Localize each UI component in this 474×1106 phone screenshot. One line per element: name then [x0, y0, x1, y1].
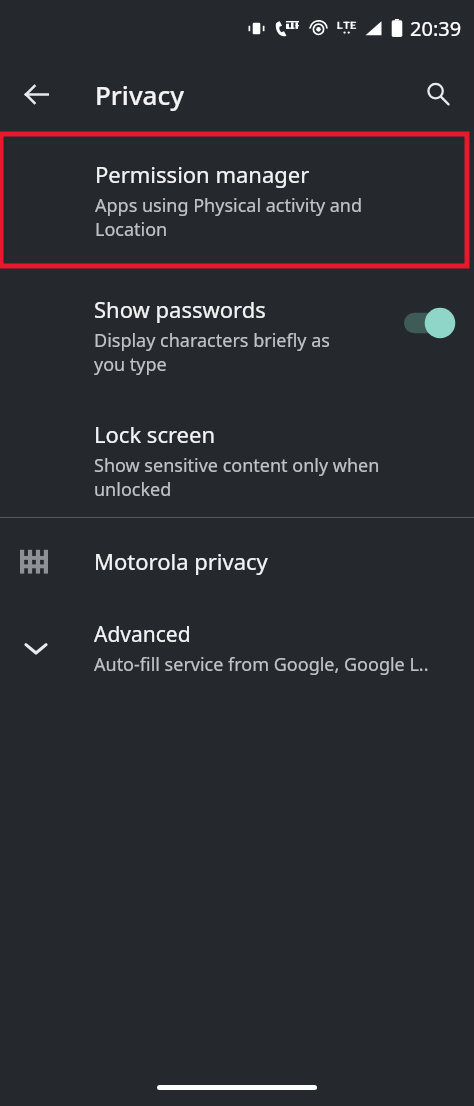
- staticText: Lock screen: [94, 419, 216, 449]
- button[interactable]: Lock screen: [0, 402, 474, 517]
- staticText: 20:39: [410, 15, 462, 42]
- staticText: Apps using Physical activity and Locatio…: [95, 193, 363, 241]
- button[interactable]: Motorola privacy: [0, 518, 474, 603]
- button[interactable]: Search: [414, 70, 462, 118]
- button[interactable]: Back: [10, 68, 62, 120]
- button[interactable]: Expand advanced: [0, 603, 474, 693]
- staticText: Auto-fill service from Google, Google L.…: [94, 652, 429, 677]
- staticText: Permission manager: [95, 159, 310, 189]
- button[interactable]: Permission manager: [1, 134, 467, 266]
- staticText: Advanced: [94, 620, 191, 649]
- button[interactable]: Show passwords toggle: [398, 306, 458, 340]
- staticText: Show passwords: [94, 294, 266, 324]
- other: Expand advanced: [22, 634, 50, 662]
- staticText: Privacy: [95, 77, 184, 112]
- staticText: Motorola privacy: [94, 546, 268, 576]
- staticText: Display characters briefly as you type: [94, 328, 330, 376]
- staticText: Show sensitive content only when unlocke…: [94, 453, 380, 501]
- button[interactable]: Show passwords: [0, 267, 474, 402]
